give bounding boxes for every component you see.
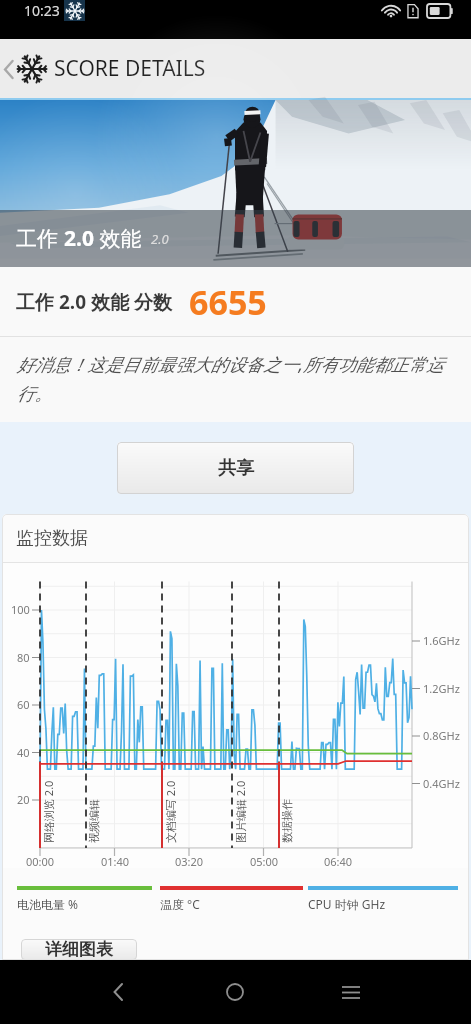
staticText: 01:40 <box>101 854 130 869</box>
staticText: 60 <box>17 697 30 712</box>
staticText: 0.8GHz <box>423 728 460 743</box>
staticText: 6655 <box>189 279 267 325</box>
button[interactable]: Home <box>195 960 275 1024</box>
staticText: 文档编写 2.0 <box>163 780 177 843</box>
button[interactable]: 详细图表 <box>21 939 137 960</box>
staticText: 80 <box>17 650 30 665</box>
staticText: CPU 时钟 GHz <box>308 896 386 912</box>
staticText: 温度 °C <box>160 896 200 912</box>
staticText: 20 <box>17 792 30 807</box>
staticText: 2.0 <box>151 230 169 248</box>
staticText: 好消息！这是目前最强大的设备之一,所有功能都正常运行。 <box>17 352 458 406</box>
button[interactable]: 共享 <box>117 442 354 494</box>
staticText: 监控数据 <box>16 527 88 550</box>
staticText: 图片编辑 2.0 <box>233 780 247 843</box>
staticText: 0.4GHz <box>423 776 460 791</box>
staticText: 工作 <box>16 224 64 253</box>
staticText: 40 <box>17 745 30 760</box>
button[interactable]: Back <box>0 46 17 92</box>
button[interactable]: Recent apps <box>311 960 391 1024</box>
staticText: 2.0 <box>64 224 94 253</box>
staticText: 1.6GHz <box>423 633 460 648</box>
staticText: 06:40 <box>324 854 353 869</box>
staticText: 视频编辑 <box>87 799 101 843</box>
staticText: 10:23 <box>24 1 60 20</box>
staticText: 100 <box>11 602 30 617</box>
staticText: 详细图表 <box>45 939 113 960</box>
staticText: 工作 2.0 效能 分数 <box>16 289 172 315</box>
staticText: 数据操作 <box>280 799 294 843</box>
staticText: SCORE DETAILS <box>54 54 206 83</box>
staticText: 05:00 <box>250 854 279 869</box>
staticText: 03:20 <box>175 854 204 869</box>
staticText: 网络浏览 2.0 <box>41 780 55 843</box>
staticText: 共享 <box>218 457 254 480</box>
button[interactable]: Back <box>78 960 158 1024</box>
staticText: 电池电量 % <box>17 896 79 912</box>
staticText: 1.2GHz <box>423 681 460 696</box>
staticText: 效能 <box>94 224 142 253</box>
staticText: 00:00 <box>26 854 55 869</box>
